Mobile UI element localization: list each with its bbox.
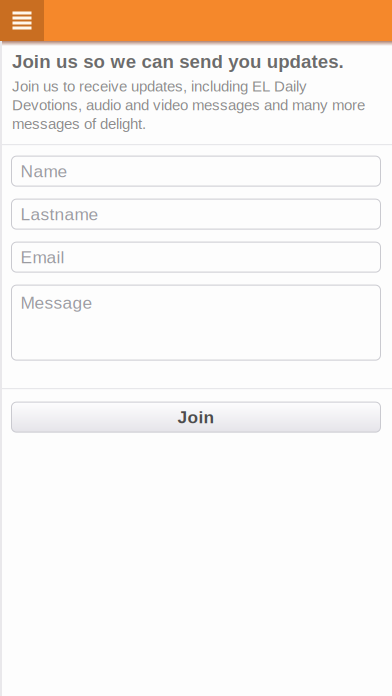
- button[interactable]: Name: [11, 156, 380, 186]
- button[interactable]: Email: [11, 242, 380, 272]
- staticText: Join us to receive updates, including EL…: [12, 78, 365, 132]
- staticText: Name: [20, 161, 67, 181]
- button[interactable]: Lastname: [11, 199, 380, 229]
- button[interactable]: Message: [11, 285, 380, 360]
- staticText: Join us so we can send you updates.: [12, 51, 344, 72]
- button[interactable]: Menu: [0, 0, 44, 41]
- staticText: Email: [20, 247, 64, 267]
- button[interactable]: Join: [11, 402, 380, 432]
- staticText: Message: [20, 293, 92, 312]
- staticText: Lastname: [20, 204, 98, 224]
- staticText: Join: [177, 407, 214, 427]
